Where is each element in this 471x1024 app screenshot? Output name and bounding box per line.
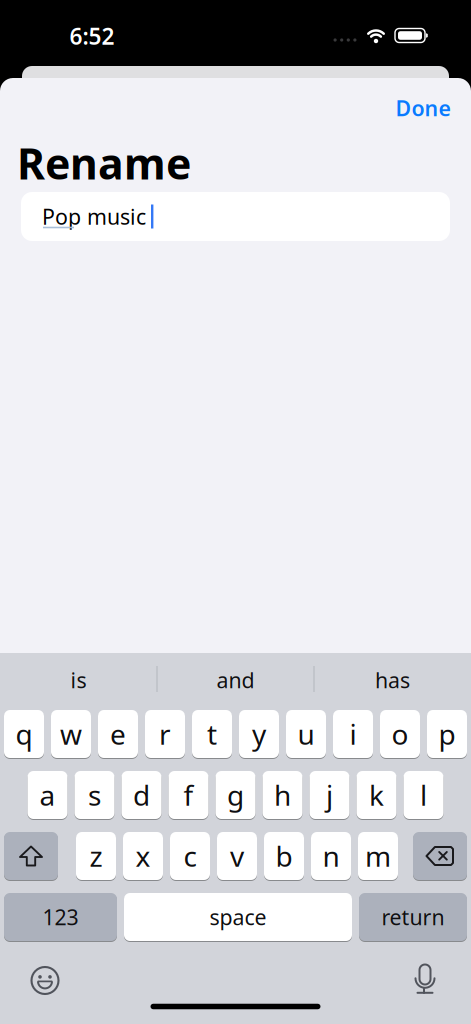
staticText: Done: [395, 94, 450, 122]
button[interactable]: s: [74, 770, 114, 819]
staticText: o: [391, 715, 408, 753]
button[interactable]: is: [8, 660, 148, 700]
button[interactable]: y: [239, 709, 279, 758]
button[interactable]: j: [309, 770, 349, 819]
button[interactable]: g: [215, 770, 255, 819]
staticText: x: [135, 837, 150, 875]
button[interactable]: e: [98, 709, 138, 758]
staticText: q: [15, 715, 32, 753]
button[interactable]: u: [286, 709, 326, 758]
button[interactable]: [23, 958, 67, 1002]
button[interactable]: w: [51, 709, 91, 758]
button[interactable]: space: [124, 892, 352, 941]
staticText: m: [365, 837, 391, 875]
button[interactable]: [413, 831, 467, 880]
staticText: i: [349, 715, 356, 753]
button[interactable]: n: [311, 831, 351, 880]
button[interactable]: t: [192, 709, 232, 758]
button[interactable]: z: [76, 831, 116, 880]
staticText: e: [110, 715, 126, 753]
button[interactable]: Done: [387, 88, 458, 128]
button[interactable]: [403, 957, 447, 1001]
staticText: c: [183, 837, 196, 875]
staticText: and: [216, 666, 254, 694]
staticText: is: [70, 666, 86, 694]
staticText: t: [207, 715, 217, 753]
button[interactable]: l: [403, 770, 443, 819]
button[interactable]: f: [168, 770, 208, 819]
button[interactable]: has: [322, 660, 462, 700]
staticText: r: [159, 715, 171, 753]
button[interactable]: and: [165, 660, 305, 700]
staticText: z: [89, 837, 102, 875]
staticText: d: [133, 776, 150, 814]
button[interactable]: b: [264, 831, 304, 880]
button[interactable]: c: [170, 831, 210, 880]
staticText: Pop music: [42, 202, 146, 231]
staticText: v: [230, 837, 244, 875]
staticText: u: [297, 715, 314, 753]
button[interactable]: d: [121, 770, 161, 819]
staticText: w: [60, 715, 82, 753]
button[interactable]: [4, 831, 58, 880]
button[interactable]: 123: [4, 892, 117, 941]
staticText: has: [375, 666, 410, 694]
staticText: f: [183, 776, 193, 814]
staticText: 123: [42, 903, 78, 931]
staticText: p: [438, 715, 455, 753]
staticText: 6:52: [69, 21, 114, 51]
button[interactable]: k: [356, 770, 396, 819]
staticText: b: [275, 837, 292, 875]
button[interactable]: p: [427, 709, 467, 758]
staticText: n: [322, 837, 339, 875]
button[interactable]: q: [4, 709, 44, 758]
staticText: l: [420, 776, 427, 814]
button[interactable]: o: [380, 709, 420, 758]
button[interactable]: r: [145, 709, 185, 758]
staticText: h: [274, 776, 291, 814]
staticText: a: [39, 776, 55, 814]
button[interactable]: m: [358, 831, 398, 880]
button[interactable]: x: [123, 831, 163, 880]
button[interactable]: Pop music: [21, 192, 450, 241]
staticText: Rename: [17, 135, 191, 191]
staticText: y: [252, 715, 266, 753]
button[interactable]: v: [217, 831, 257, 880]
staticText: space: [209, 903, 266, 931]
button[interactable]: i: [333, 709, 373, 758]
staticText: s: [88, 776, 101, 814]
button[interactable]: a: [27, 770, 67, 819]
button[interactable]: h: [262, 770, 302, 819]
staticText: g: [227, 776, 244, 814]
staticText: k: [369, 776, 384, 814]
staticText: return: [381, 903, 444, 931]
staticText: j: [326, 776, 333, 814]
button[interactable]: return: [359, 892, 467, 941]
